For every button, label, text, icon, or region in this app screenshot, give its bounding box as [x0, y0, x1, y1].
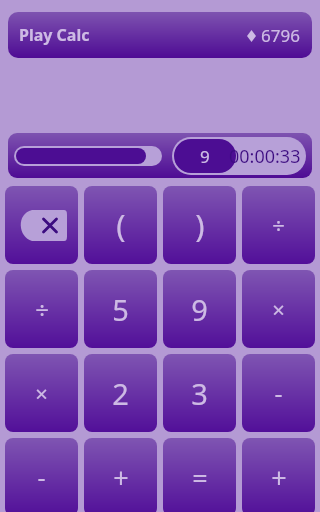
button[interactable]: ÷: [242, 186, 315, 264]
staticText: +: [271, 459, 287, 496]
staticText: ÷: [272, 210, 285, 240]
button[interactable]: +: [84, 438, 157, 512]
staticText: ×: [272, 294, 285, 324]
button[interactable]: ÷: [5, 270, 78, 348]
button[interactable]: Progress: [14, 146, 162, 166]
staticText: =: [192, 459, 208, 496]
staticText: ÷: [35, 293, 49, 326]
staticText: 9: [200, 145, 210, 168]
staticText: 9: [191, 290, 208, 329]
button[interactable]: ): [163, 186, 236, 264]
staticText: -: [274, 376, 283, 410]
staticText: ×: [35, 378, 48, 408]
button[interactable]: 2: [84, 354, 157, 432]
staticText: 3: [191, 374, 208, 413]
staticText: 00:00:33: [229, 144, 301, 169]
button[interactable]: -: [5, 438, 78, 512]
button[interactable]: -: [242, 354, 315, 432]
button[interactable]: =: [163, 438, 236, 512]
button[interactable]: (: [84, 186, 157, 264]
staticText: ): [195, 204, 205, 246]
button[interactable]: 9: [163, 270, 236, 348]
staticText: 2: [112, 374, 129, 413]
staticText: 5: [112, 290, 129, 329]
button[interactable]: ×: [5, 354, 78, 432]
button[interactable]: 9: [172, 137, 306, 175]
button[interactable]: 3: [163, 354, 236, 432]
button[interactable]: Backspace: [5, 186, 78, 264]
button[interactable]: +: [242, 438, 315, 512]
staticText: -: [37, 460, 46, 494]
button[interactable]: 5: [84, 270, 157, 348]
staticText: Play Calc: [19, 24, 90, 46]
staticText: 6796: [261, 24, 300, 47]
staticText: +: [113, 459, 129, 496]
button[interactable]: Play Calc: [8, 12, 312, 58]
button[interactable]: ×: [242, 270, 315, 348]
staticText: (: [116, 204, 126, 246]
